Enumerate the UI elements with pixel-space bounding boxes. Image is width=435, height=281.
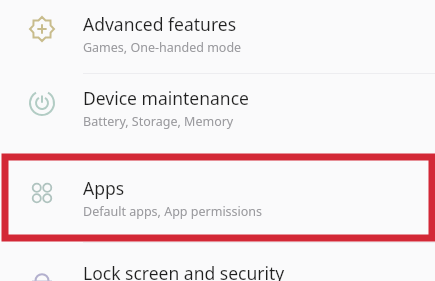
staticText: Advanced features (83, 12, 237, 36)
button[interactable]: Lock screen and security (0, 243, 435, 281)
button[interactable]: Apps (0, 164, 435, 234)
button[interactable]: Device maintenance (0, 74, 435, 147)
other: Lock screen and security (0, 243, 83, 281)
staticText: Battery, Storage, Memory (83, 113, 234, 130)
button[interactable]: Advanced features (0, 0, 435, 73)
staticText: Default apps, App permissions (83, 203, 263, 220)
other: Advanced features (0, 0, 83, 73)
other: Device maintenance (0, 74, 83, 147)
other: Apps (0, 164, 83, 234)
staticText: Device maintenance (83, 86, 249, 110)
staticText: Games, One-handed mode (83, 39, 242, 56)
staticText: Apps (83, 176, 125, 200)
staticText: Lock screen and security (83, 261, 285, 281)
